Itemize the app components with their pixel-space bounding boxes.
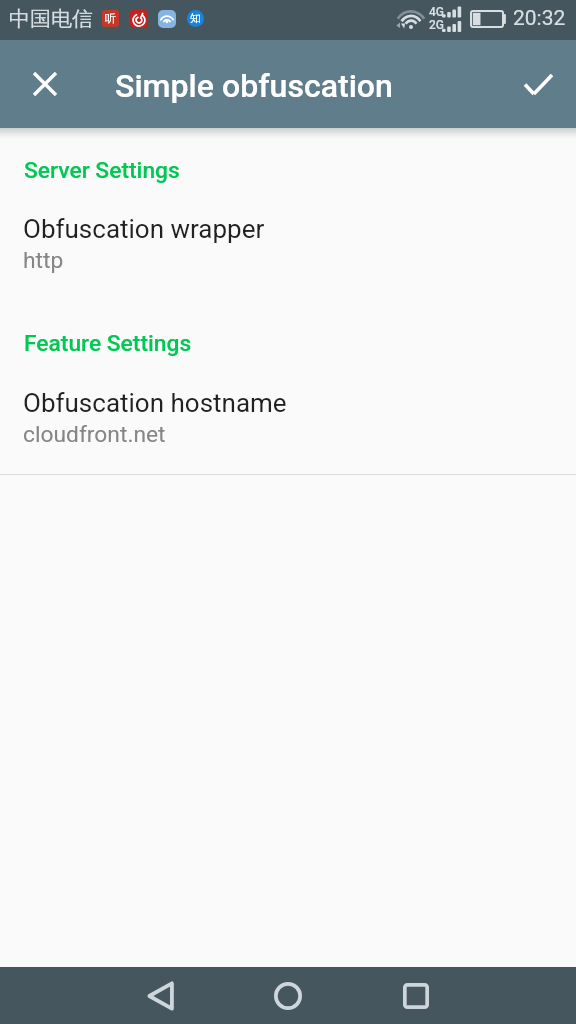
staticText: Obfuscation wrapper [23,214,265,244]
staticText: 4G [429,5,444,19]
staticText: Obfuscation hostname [23,388,287,418]
button[interactable]: Recents [384,967,448,1024]
staticText: Feature Settings [24,330,192,357]
staticText: 20:32 [513,6,566,31]
staticText: 听 [105,11,116,25]
button[interactable]: Back [128,967,192,1024]
staticText: http [23,247,64,274]
staticText: Simple obfuscation [115,67,393,105]
button[interactable]: Close [21,60,69,108]
button[interactable]: Obfuscation hostname [0,370,576,445]
staticText: 知 [190,11,201,25]
button[interactable]: Home [256,967,320,1024]
staticText: 2G [429,18,444,32]
staticText: 中国电信 [9,6,93,32]
staticText: Server Settings [24,157,180,184]
staticText: cloudfront.net [23,421,166,448]
button[interactable]: Obfuscation wrapper [0,196,576,271]
button[interactable]: Save [514,60,562,108]
